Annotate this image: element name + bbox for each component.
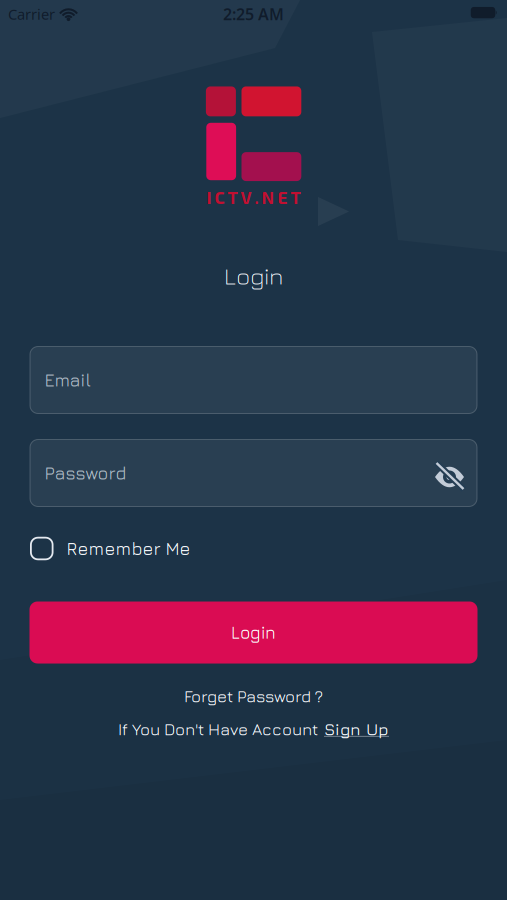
staticText: Carrier [8,4,55,24]
staticText: Sign Up [324,719,389,739]
button[interactable]: Forget Password ? [184,686,323,706]
staticText: Forget Password ? [184,686,323,706]
staticText: Remember Me [66,538,190,559]
button[interactable]: Remember Me [30,533,250,563]
staticText: Email [44,370,90,390]
staticText: Login [224,261,283,290]
button[interactable]: Login [29,601,477,663]
button[interactable]: Show password [429,458,469,496]
staticText: If You Don't Have Account [118,719,318,739]
button[interactable]: Email [29,346,477,414]
button[interactable]: Password [29,439,477,507]
staticText: I C T V . N E T [206,187,300,207]
button[interactable]: Sign Up [324,719,389,739]
staticText: 2:25 AM [223,3,284,25]
staticText: Password [44,463,126,483]
staticText: Login [231,622,276,643]
